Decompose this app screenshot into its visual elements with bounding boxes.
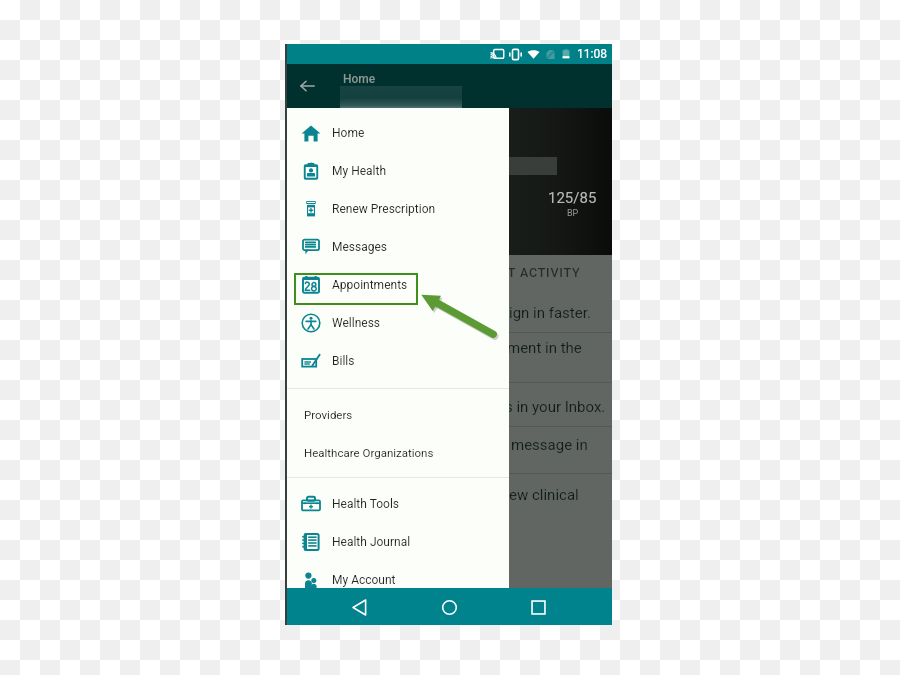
staticText: 11:08 [577, 47, 607, 61]
button[interactable]: Home [285, 114, 509, 152]
button[interactable]: Home [433, 591, 465, 623]
staticText: My Health [332, 164, 387, 178]
staticText: ign in faster. [509, 304, 591, 322]
button[interactable]: Messages [285, 228, 509, 266]
staticText: Appointments [332, 278, 408, 292]
staticText: ment in the [507, 339, 582, 357]
staticText: Health Journal [332, 535, 411, 549]
button[interactable]: Health Tools [285, 485, 509, 523]
staticText: Home [332, 126, 365, 140]
button[interactable]: Recents [522, 591, 554, 623]
staticText: message in [511, 436, 588, 454]
staticText: Home [343, 72, 376, 86]
button[interactable]: Renew Prescription [285, 190, 509, 228]
staticText: ew clinical [509, 486, 579, 504]
staticText: s in your Inbox. [505, 398, 606, 416]
button[interactable]: My Health [285, 152, 509, 190]
staticText: 125/85 [548, 189, 597, 207]
staticText: Health Tools [332, 497, 400, 511]
button[interactable]: Back [343, 591, 375, 623]
staticText: Providers [304, 408, 353, 421]
staticText: My Account [332, 573, 396, 587]
button[interactable]: Bills [285, 342, 509, 380]
button[interactable]: Providers [285, 395, 509, 433]
button[interactable]: Health Journal [285, 523, 509, 561]
staticText: Healthcare Organizations [304, 446, 434, 459]
staticText: Wellness [332, 316, 381, 330]
button[interactable]: Healthcare Organizations [285, 433, 509, 471]
staticText: BP [567, 208, 579, 219]
staticText: Messages [332, 240, 388, 254]
button[interactable]: Wellness [285, 304, 509, 342]
button[interactable]: Appointments [285, 266, 509, 304]
staticText: Renew Prescription [332, 202, 436, 216]
staticText: RECENT ACTIVITY [465, 265, 581, 280]
staticText: Bills [332, 354, 355, 368]
button[interactable]: My Account [285, 561, 509, 588]
button[interactable]: Back [293, 72, 321, 100]
